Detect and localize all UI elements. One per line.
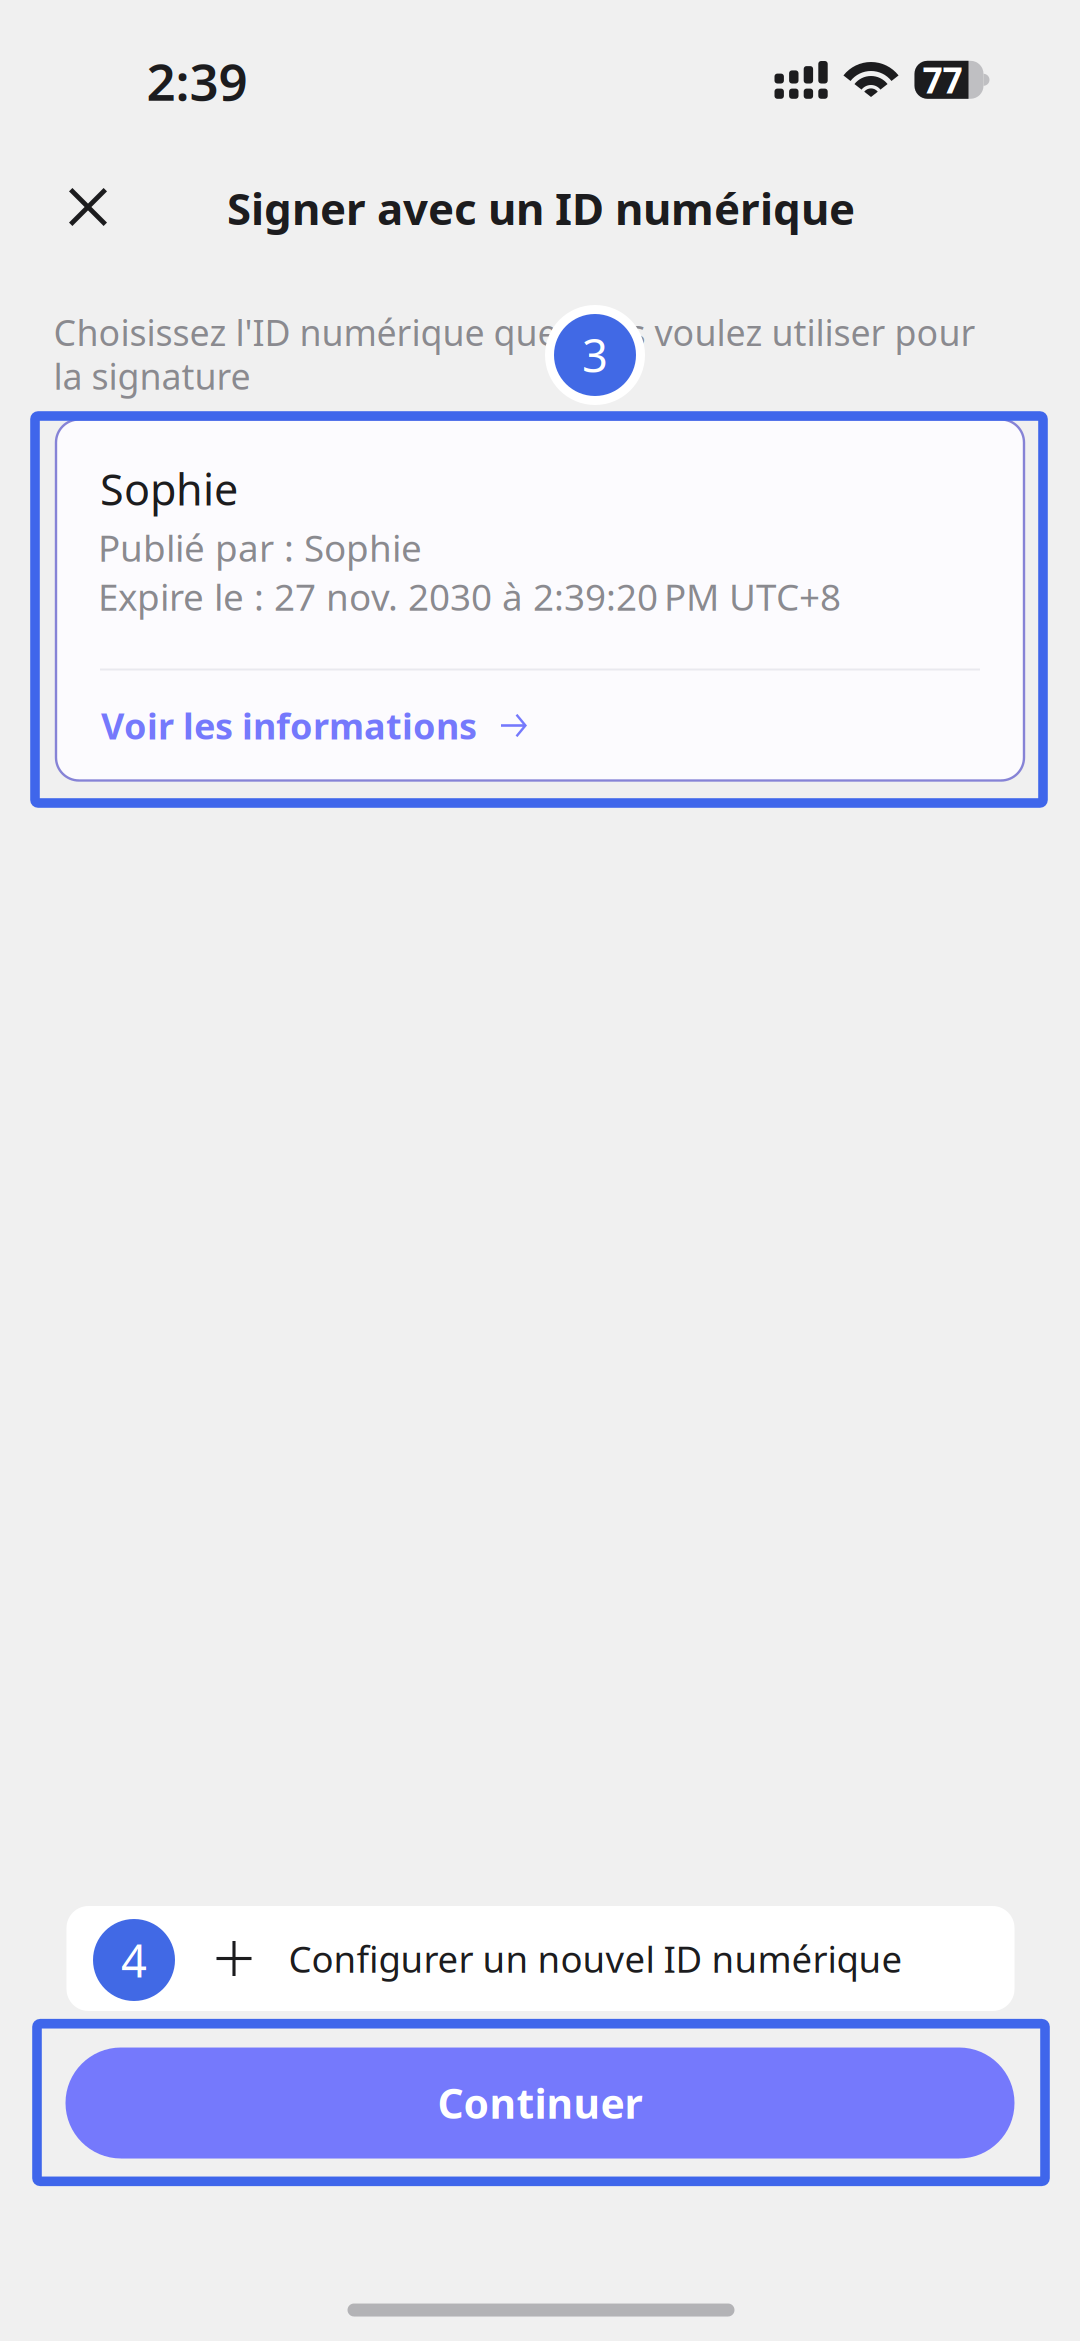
staticText: 2:39 [146, 46, 247, 116]
staticText: Publié par : Sophie [98, 522, 422, 573]
button[interactable]: Continuer [65, 2047, 1014, 2158]
button[interactable]: Fermer [36, 155, 140, 259]
button[interactable]: Voir les informations [56, 670, 1024, 780]
staticText: Sophie [100, 459, 238, 518]
staticText: Voir les informations [101, 701, 477, 750]
staticText: Expire le : 27 nov. 2030 à 2:39:20 PM UT… [98, 571, 841, 622]
staticText: Choisissez l'ID numérique que vous voule… [53, 308, 975, 400]
staticText: Configurer un nouvel ID numérique [288, 1934, 902, 1983]
staticText: Signer avec un ID numérique [227, 178, 855, 238]
staticText: 77 [922, 56, 962, 104]
staticText: Continuer [437, 2075, 642, 2131]
staticText: 3 [582, 324, 608, 386]
staticText: 4 [121, 1929, 147, 1991]
button[interactable]: Configurer un nouvel ID numérique [66, 1906, 1014, 2011]
